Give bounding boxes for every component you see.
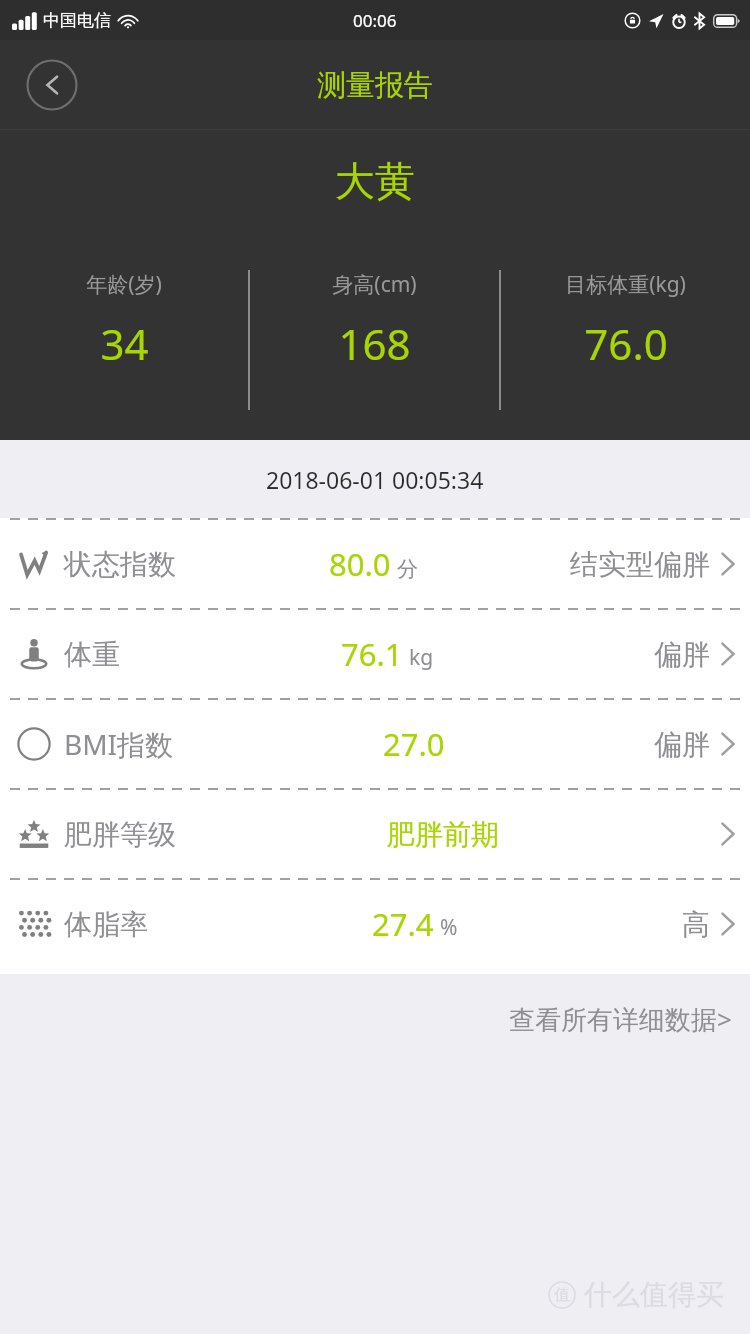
staticText: 状态指数 (64, 547, 176, 582)
staticText: 高 (682, 907, 710, 942)
staticText: 76.0 (584, 315, 668, 372)
staticText: 00:06 (353, 9, 397, 32)
button[interactable]: 返回 (26, 59, 78, 111)
staticText: 查看所有详细数据> (509, 1001, 732, 1037)
staticText: 肥胖前期 (387, 817, 499, 852)
staticText: kg (409, 643, 434, 672)
staticText: 76.1 (341, 633, 403, 675)
button[interactable]: 肥胖等级 (0, 790, 750, 878)
staticText: 身高(cm) (332, 270, 417, 299)
button[interactable]: 体重 (0, 610, 750, 698)
staticText: % (440, 913, 458, 942)
button[interactable]: 查看所有详细数据> (505, 993, 736, 1045)
staticText: 测量报告 (317, 67, 433, 104)
button[interactable]: 状态指数 (0, 520, 750, 608)
staticText: 偏胖 (654, 637, 710, 672)
staticText: 27.0 (383, 723, 445, 765)
staticText: 结实型偏胖 (570, 547, 710, 582)
staticText: 年龄(岁) (86, 270, 162, 299)
staticText: 2018-06-01 00:05:34 (266, 464, 484, 495)
button[interactable]: BMI指数 (0, 700, 750, 788)
staticText: 大黄 (335, 156, 415, 206)
staticText: BMI指数 (64, 725, 174, 763)
button[interactable]: 体脂率 (0, 880, 750, 968)
staticText: 体脂率 (64, 907, 148, 942)
staticText: 值 (554, 1285, 570, 1305)
staticText: 肥胖等级 (64, 817, 176, 852)
staticText: 中国电信 (43, 10, 111, 31)
staticText: 27.4 (372, 903, 434, 945)
staticText: 偏胖 (654, 727, 710, 762)
staticText: 168 (338, 315, 411, 372)
staticText: 80.0 (329, 543, 391, 585)
staticText: 什么值得买 (584, 1277, 724, 1312)
staticText: 34 (100, 315, 149, 372)
staticText: 体重 (64, 637, 120, 672)
staticText: 目标体重(kg) (565, 270, 686, 299)
staticText: 分 (397, 556, 418, 582)
